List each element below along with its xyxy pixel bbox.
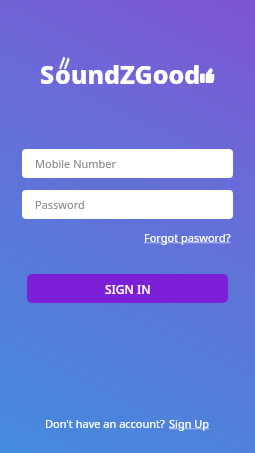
button[interactable]: Forgot pasword? [142,228,233,247]
staticText: S [40,57,55,91]
button[interactable]: Password input [22,190,233,219]
staticText: Password [35,197,85,212]
staticText: Mobile Number [35,156,117,171]
staticText: Forgot pasword? [144,230,231,245]
staticText: Don't have an account? [45,416,168,431]
staticText: o [55,57,71,91]
button[interactable]: SIGN IN [27,274,228,303]
staticText: SIGN IN [105,281,151,297]
button[interactable]: Sign Up [168,414,211,433]
staticText: Sign Up [169,416,210,431]
button[interactable]: Mobile Number input [22,149,233,178]
staticText: undZGood [71,57,201,91]
